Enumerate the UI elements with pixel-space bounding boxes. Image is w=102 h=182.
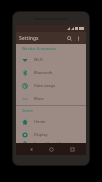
button[interactable]: Bluetooth <box>16 66 86 79</box>
staticText: Settings <box>19 35 65 42</box>
staticText: Wi-Fi <box>34 57 82 62</box>
button[interactable]: Data usage <box>16 79 86 92</box>
staticText: Bluetooth <box>34 70 82 75</box>
button[interactable]: Wi-Fi <box>16 53 86 66</box>
staticText: More <box>34 96 82 101</box>
button[interactable]: Sound & notification <box>16 141 86 143</box>
staticText: Sound & notification <box>34 141 82 143</box>
staticText: Device <box>22 108 34 113</box>
staticText: Wireless & networks <box>22 46 57 51</box>
button[interactable]: Display <box>16 128 86 141</box>
button[interactable]: More options <box>74 34 83 43</box>
button[interactable]: Home <box>45 143 57 155</box>
button[interactable]: Search <box>65 34 74 43</box>
button[interactable]: More <box>16 92 86 105</box>
button[interactable]: Back <box>25 143 37 155</box>
button[interactable]: Home <box>16 115 86 128</box>
staticText: Display <box>34 132 82 137</box>
staticText: Home <box>34 119 82 124</box>
staticText: Data usage <box>34 83 82 88</box>
button[interactable]: Recent apps <box>66 143 78 155</box>
